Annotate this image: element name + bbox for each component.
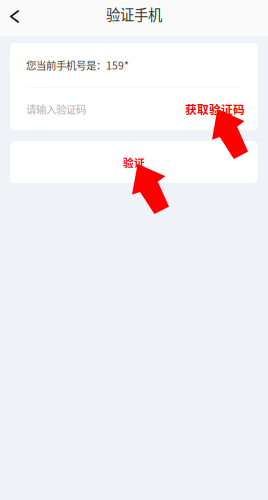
staticText: 您当前手机号是：159* [26,57,129,73]
button[interactable]: 验证 [10,141,258,183]
staticText: 请输入验证码 [26,101,86,117]
staticText: 获取验证码 [185,101,245,117]
button[interactable]: Back [0,0,29,36]
staticText: 验证 [123,154,145,170]
staticText: 验证手机 [106,4,162,24]
button[interactable]: 获取验证码 [185,101,245,117]
